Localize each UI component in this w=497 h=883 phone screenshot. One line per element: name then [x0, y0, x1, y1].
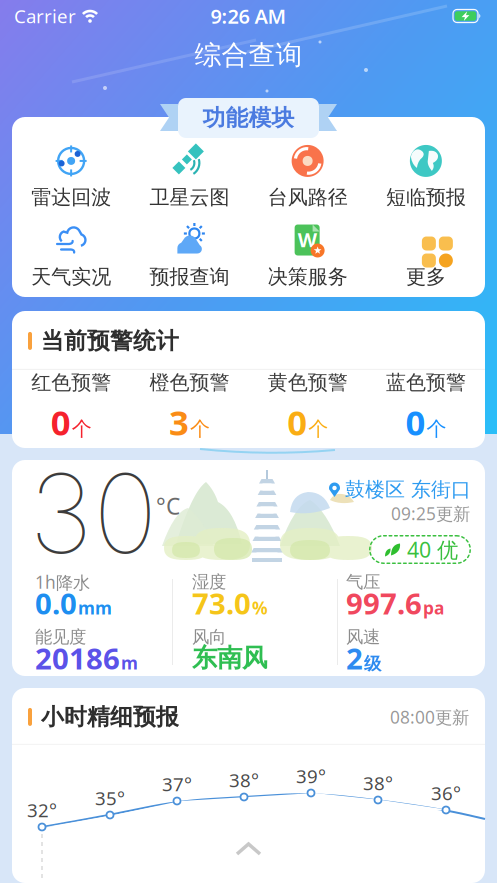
staticText: 卫星云图: [149, 185, 229, 209]
staticText: 雷达回波: [31, 185, 111, 209]
staticText: 黄色预警: [268, 370, 348, 395]
staticText: 0: [405, 399, 425, 445]
staticText: 3: [169, 399, 189, 445]
staticText: 38°: [363, 771, 393, 795]
staticText: 功能模块: [202, 104, 294, 132]
staticText: 级: [364, 653, 381, 674]
staticText: 个: [190, 416, 210, 441]
staticText: 东南风: [192, 642, 267, 673]
staticText: 当前预警统计: [41, 327, 179, 355]
staticText: 32°: [27, 798, 57, 822]
staticText: 08:00更新: [390, 705, 469, 728]
staticText: 0.0: [35, 583, 77, 622]
staticText: 997.6: [346, 583, 422, 622]
staticText: 40 优: [407, 535, 458, 564]
staticText: W: [298, 226, 317, 253]
staticText: 个: [426, 416, 446, 441]
button[interactable]: 黄色预警: [248, 370, 367, 445]
button[interactable]: 蓝色预警: [367, 370, 485, 445]
button[interactable]: 短临预报: [367, 143, 485, 209]
button[interactable]: 预报查询: [130, 222, 248, 289]
staticText: 鼓楼区 东街口: [345, 477, 471, 502]
staticText: mm: [78, 596, 112, 619]
staticText: 橙色预警: [149, 370, 229, 395]
staticText: 综合查询: [194, 39, 302, 71]
staticText: 39°: [296, 764, 326, 788]
staticText: 30: [29, 447, 158, 579]
staticText: 35°: [95, 786, 125, 810]
staticText: 1h降水: [35, 570, 90, 593]
staticText: %: [252, 596, 268, 619]
button[interactable]: 40 优: [369, 535, 471, 564]
staticText: 36°: [431, 781, 461, 805]
staticText: 09:25更新: [391, 502, 470, 525]
staticText: 预报查询: [149, 264, 229, 289]
button[interactable]: 橙色预警: [130, 370, 248, 445]
staticText: 0: [51, 399, 71, 445]
staticText: m: [121, 651, 138, 674]
staticText: 能见度: [35, 626, 86, 648]
staticText: 个: [308, 416, 328, 441]
staticText: 更多: [406, 264, 446, 289]
staticText: 个: [72, 416, 92, 441]
staticText: 红色预警: [31, 370, 111, 395]
staticText: 2: [346, 638, 363, 677]
staticText: 小时精细预报: [41, 703, 179, 731]
staticText: 短临预报: [386, 185, 466, 209]
button[interactable]: 鼓楼区 东街口: [328, 481, 471, 498]
staticText: 38°: [229, 768, 259, 792]
staticText: 蓝色预警: [386, 370, 466, 395]
button[interactable]: 功能模块: [178, 98, 319, 138]
staticText: 风速: [346, 626, 380, 648]
staticText: 台风路径: [268, 185, 348, 209]
staticText: 20186: [35, 638, 120, 677]
staticText: 湿度: [192, 571, 226, 593]
button[interactable]: 雷达回波: [12, 143, 130, 209]
button[interactable]: 红色预警: [12, 370, 130, 445]
button[interactable]: 展开: [237, 844, 260, 854]
staticText: °C: [156, 491, 180, 521]
staticText: 9:26 AM: [210, 3, 286, 29]
staticText: pa: [423, 596, 444, 619]
staticText: Carrier: [14, 4, 76, 28]
staticText: 气压: [346, 571, 380, 593]
staticText: 天气实况: [31, 264, 111, 289]
staticText: 37°: [162, 772, 192, 796]
button[interactable]: 卫星云图: [130, 143, 248, 209]
button[interactable]: 更多: [367, 222, 485, 289]
staticText: 73.0: [192, 583, 251, 622]
button[interactable]: W: [248, 222, 367, 289]
staticText: 风向: [192, 626, 226, 648]
button[interactable]: 天气实况: [12, 222, 130, 289]
button[interactable]: 台风路径: [248, 143, 367, 209]
staticText: 0: [287, 399, 307, 445]
staticText: 决策服务: [268, 264, 348, 289]
